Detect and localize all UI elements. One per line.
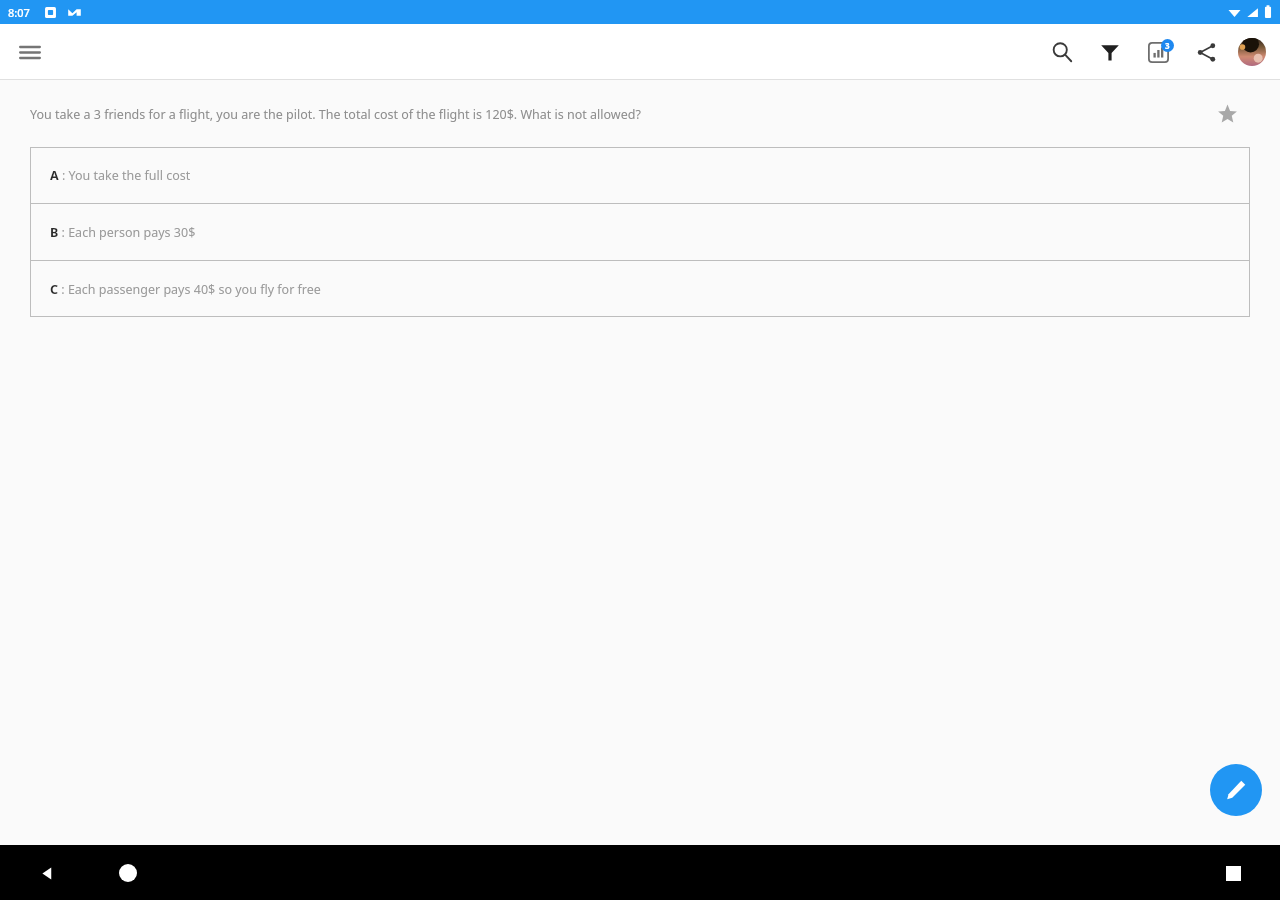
button[interactable]: Account xyxy=(1230,30,1274,74)
button[interactable]: Statistics, 3 new xyxy=(1134,28,1182,76)
button[interactable]: Share xyxy=(1182,28,1230,76)
staticText: 8:07 xyxy=(8,5,30,20)
button[interactable]: Back xyxy=(23,849,71,897)
button[interactable]: B : Each person pays 30$ xyxy=(30,204,1250,260)
button[interactable]: C : Each passenger pays 40$ so you fly f… xyxy=(30,261,1250,317)
button[interactable]: Search xyxy=(1038,28,1086,76)
button[interactable]: A : You take the full cost xyxy=(30,147,1250,203)
staticText: C : Each passenger pays 40$ so you fly f… xyxy=(50,281,321,298)
button[interactable]: Recent apps xyxy=(1209,849,1257,897)
button[interactable]: Favorite xyxy=(1210,97,1244,131)
staticText: B : Each person pays 30$ xyxy=(50,224,196,241)
button[interactable]: Home xyxy=(104,849,152,897)
button[interactable]: Open navigation drawer xyxy=(6,28,54,76)
button[interactable]: Edit xyxy=(1210,764,1262,816)
staticText: You take a 3 friends for a flight, you a… xyxy=(30,106,641,123)
button[interactable]: Filter xyxy=(1086,28,1134,76)
staticText: A : You take the full cost xyxy=(50,167,191,184)
staticText: 3 xyxy=(1165,40,1170,51)
